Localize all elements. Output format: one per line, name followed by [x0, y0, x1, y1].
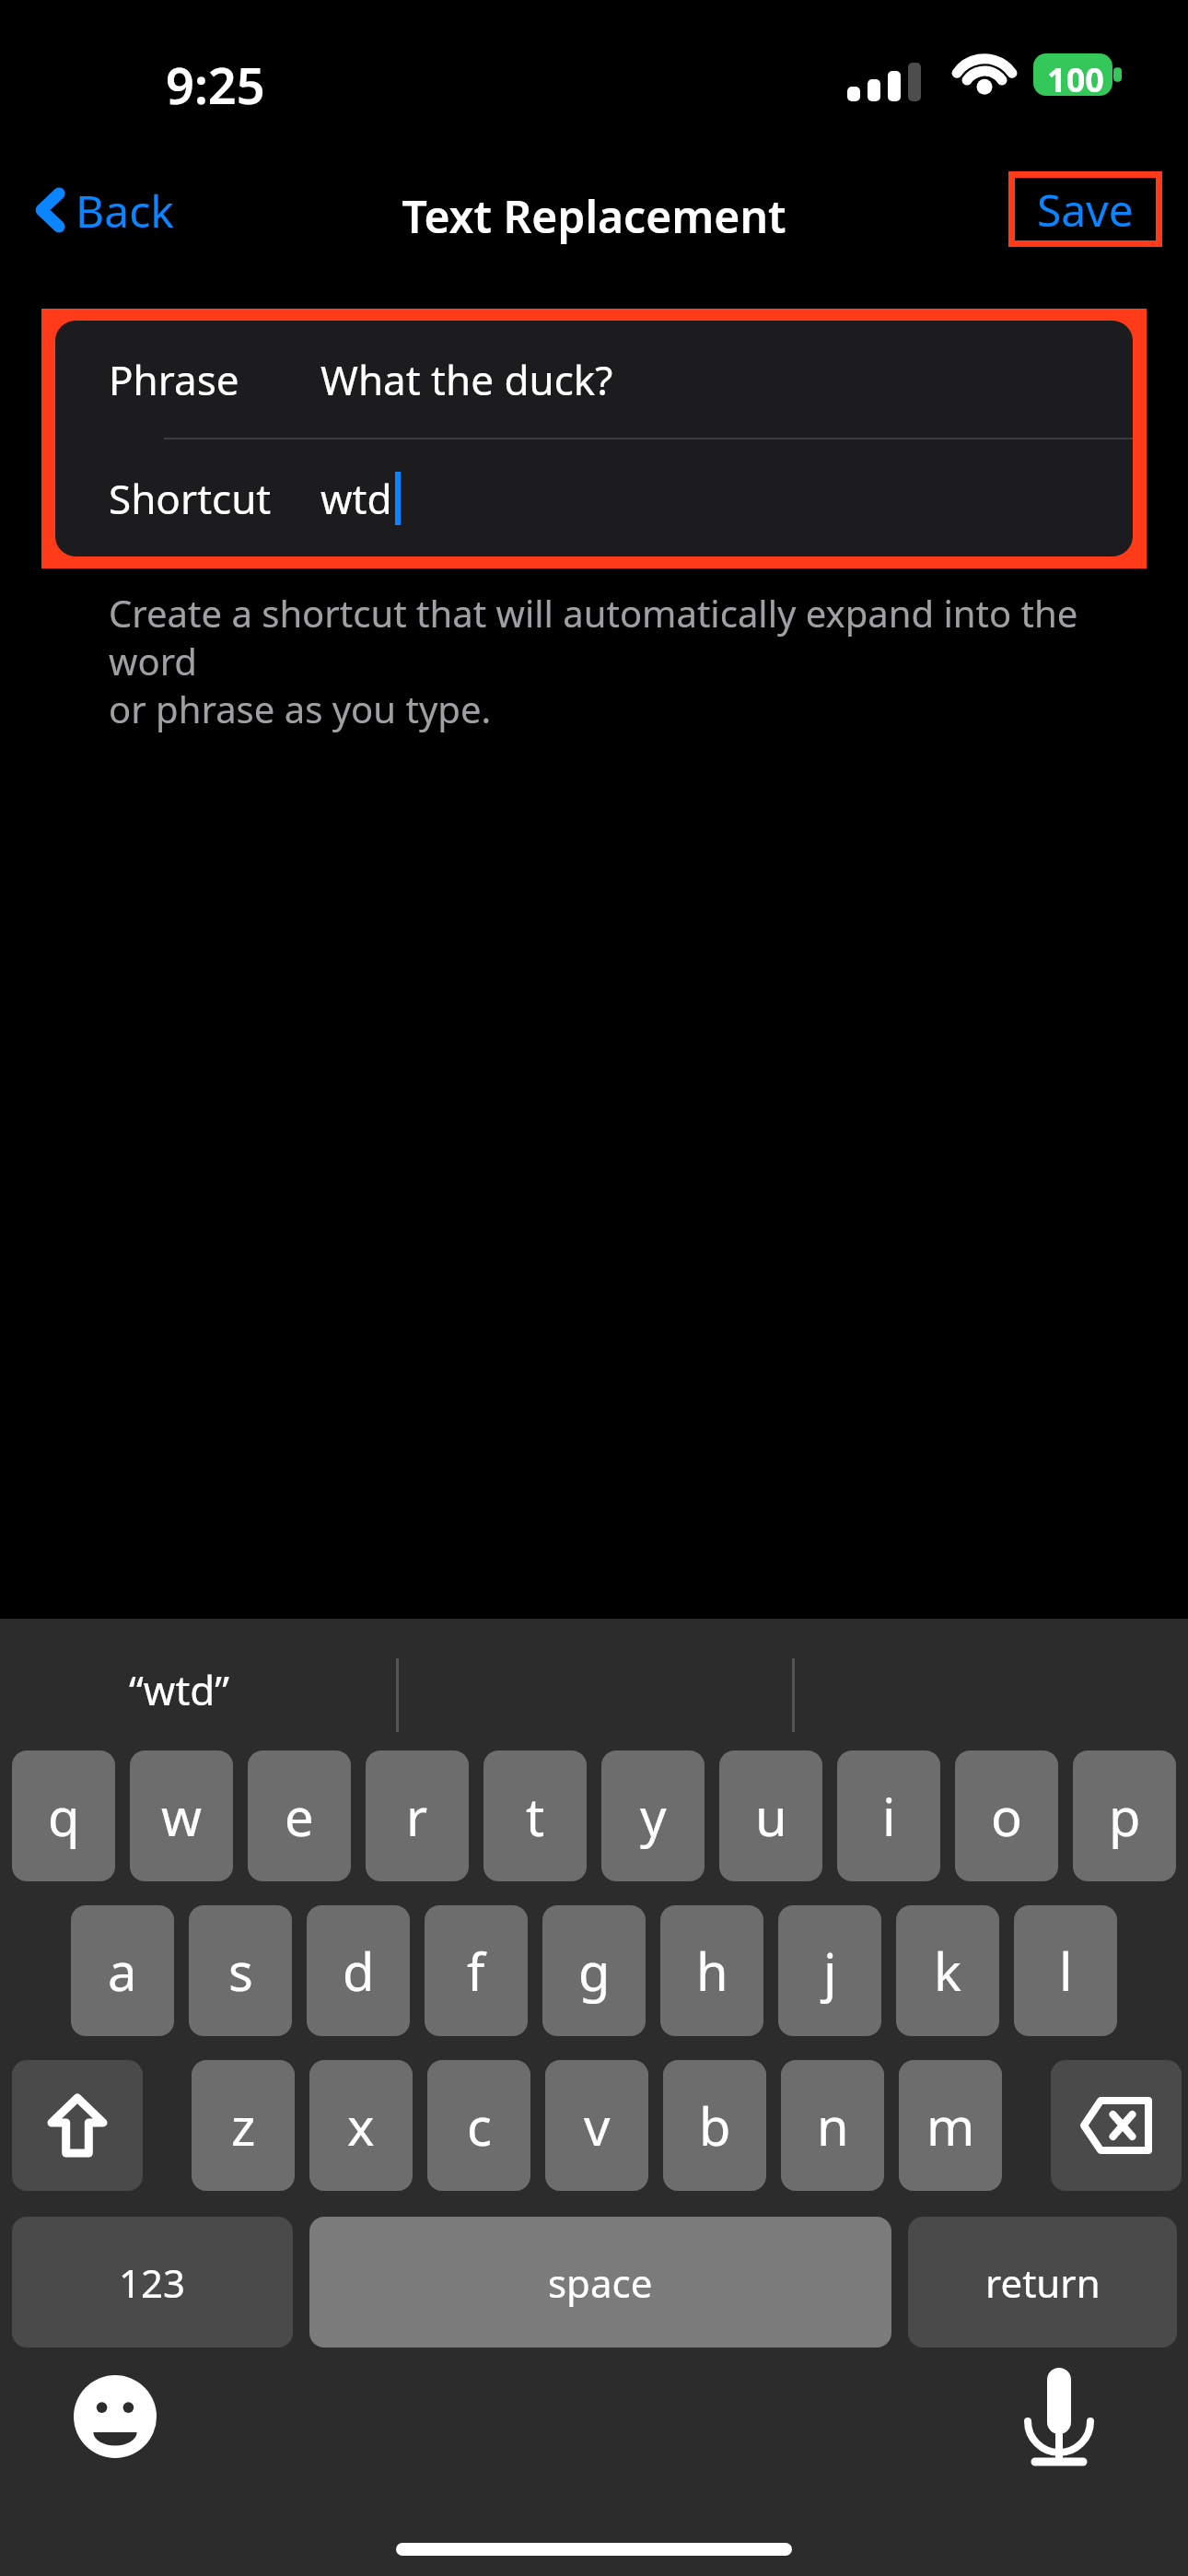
staticText: Save	[1037, 180, 1134, 240]
staticText: z	[231, 2090, 256, 2160]
button[interactable]: e	[248, 1751, 351, 1881]
button[interactable]: n	[781, 2060, 884, 2191]
button[interactable]: “wtd”	[129, 1662, 230, 1717]
button[interactable]: Emoji	[74, 2375, 157, 2458]
button[interactable]: d	[307, 1905, 410, 2036]
staticText: Text Replacement	[0, 186, 1188, 246]
staticText: 100	[1041, 57, 1111, 102]
staticText: d	[343, 1936, 375, 2006]
button[interactable]: i	[837, 1751, 940, 1881]
staticText: u	[755, 1781, 787, 1851]
staticText: m	[926, 2090, 975, 2160]
button[interactable]: m	[899, 2060, 1002, 2191]
staticText: c	[467, 2090, 492, 2160]
staticText: g	[578, 1936, 611, 2006]
staticText: e	[285, 1781, 314, 1851]
staticText: return	[985, 2256, 1101, 2309]
button[interactable]: y	[601, 1751, 705, 1881]
button[interactable]: j	[778, 1905, 881, 2036]
staticText: y	[640, 1781, 667, 1851]
staticText: j	[823, 1936, 837, 2006]
button[interactable]: Shift	[12, 2060, 143, 2191]
staticText: v	[584, 2090, 611, 2160]
staticText: 9:25	[166, 51, 265, 119]
staticText: r	[406, 1781, 428, 1851]
button[interactable]: l	[1014, 1905, 1117, 2036]
staticText: i	[882, 1781, 896, 1851]
button[interactable]: r	[366, 1751, 469, 1881]
staticText: What the duck?	[320, 352, 613, 407]
button[interactable]: space	[309, 2217, 891, 2348]
button[interactable]: Dictation	[1022, 2364, 1096, 2465]
button[interactable]: v	[545, 2060, 648, 2191]
staticText: w	[161, 1781, 203, 1851]
button[interactable]: g	[542, 1905, 646, 2036]
staticText: f	[467, 1936, 485, 2006]
button[interactable]: return	[908, 2217, 1177, 2348]
button[interactable]: a	[71, 1905, 174, 2036]
button[interactable]: p	[1073, 1751, 1176, 1881]
staticText: Back	[76, 181, 174, 240]
staticText: Shortcut	[109, 471, 320, 526]
staticText: b	[699, 2090, 731, 2160]
staticText: o	[991, 1781, 1022, 1851]
staticText: Phrase	[109, 352, 320, 407]
button[interactable]: u	[719, 1751, 822, 1881]
button[interactable]: s	[189, 1905, 292, 2036]
staticText: Create a shortcut that will automaticall…	[109, 588, 1122, 734]
button[interactable]: 123	[12, 2217, 293, 2348]
button[interactable]: k	[896, 1905, 999, 2036]
staticText: k	[934, 1936, 961, 2006]
button[interactable]: Back	[28, 173, 185, 247]
button[interactable]: Shortcut	[55, 439, 1133, 556]
button[interactable]: Save	[1015, 178, 1156, 240]
staticText: h	[696, 1936, 728, 2006]
button[interactable]: f	[425, 1905, 528, 2036]
button[interactable]: b	[663, 2060, 766, 2191]
staticText: l	[1059, 1936, 1073, 2006]
button[interactable]: o	[955, 1751, 1058, 1881]
button[interactable]: Phrase	[55, 321, 1133, 438]
staticText: q	[48, 1781, 80, 1851]
button[interactable]: c	[427, 2060, 530, 2191]
staticText: 123	[119, 2256, 186, 2309]
button[interactable]: z	[192, 2060, 295, 2191]
button[interactable]: Backspace	[1051, 2060, 1182, 2191]
staticText: p	[1109, 1781, 1141, 1851]
button[interactable]: t	[483, 1751, 587, 1881]
button[interactable]: w	[130, 1751, 233, 1881]
staticText: wtd	[320, 471, 392, 526]
staticText: space	[548, 2256, 653, 2309]
button[interactable]: x	[309, 2060, 413, 2191]
staticText: a	[108, 1936, 137, 2006]
staticText: n	[817, 2090, 849, 2160]
staticText: x	[347, 2090, 375, 2160]
button[interactable]: h	[660, 1905, 763, 2036]
staticText: t	[526, 1781, 545, 1851]
button[interactable]: q	[12, 1751, 115, 1881]
staticText: s	[228, 1936, 253, 2006]
